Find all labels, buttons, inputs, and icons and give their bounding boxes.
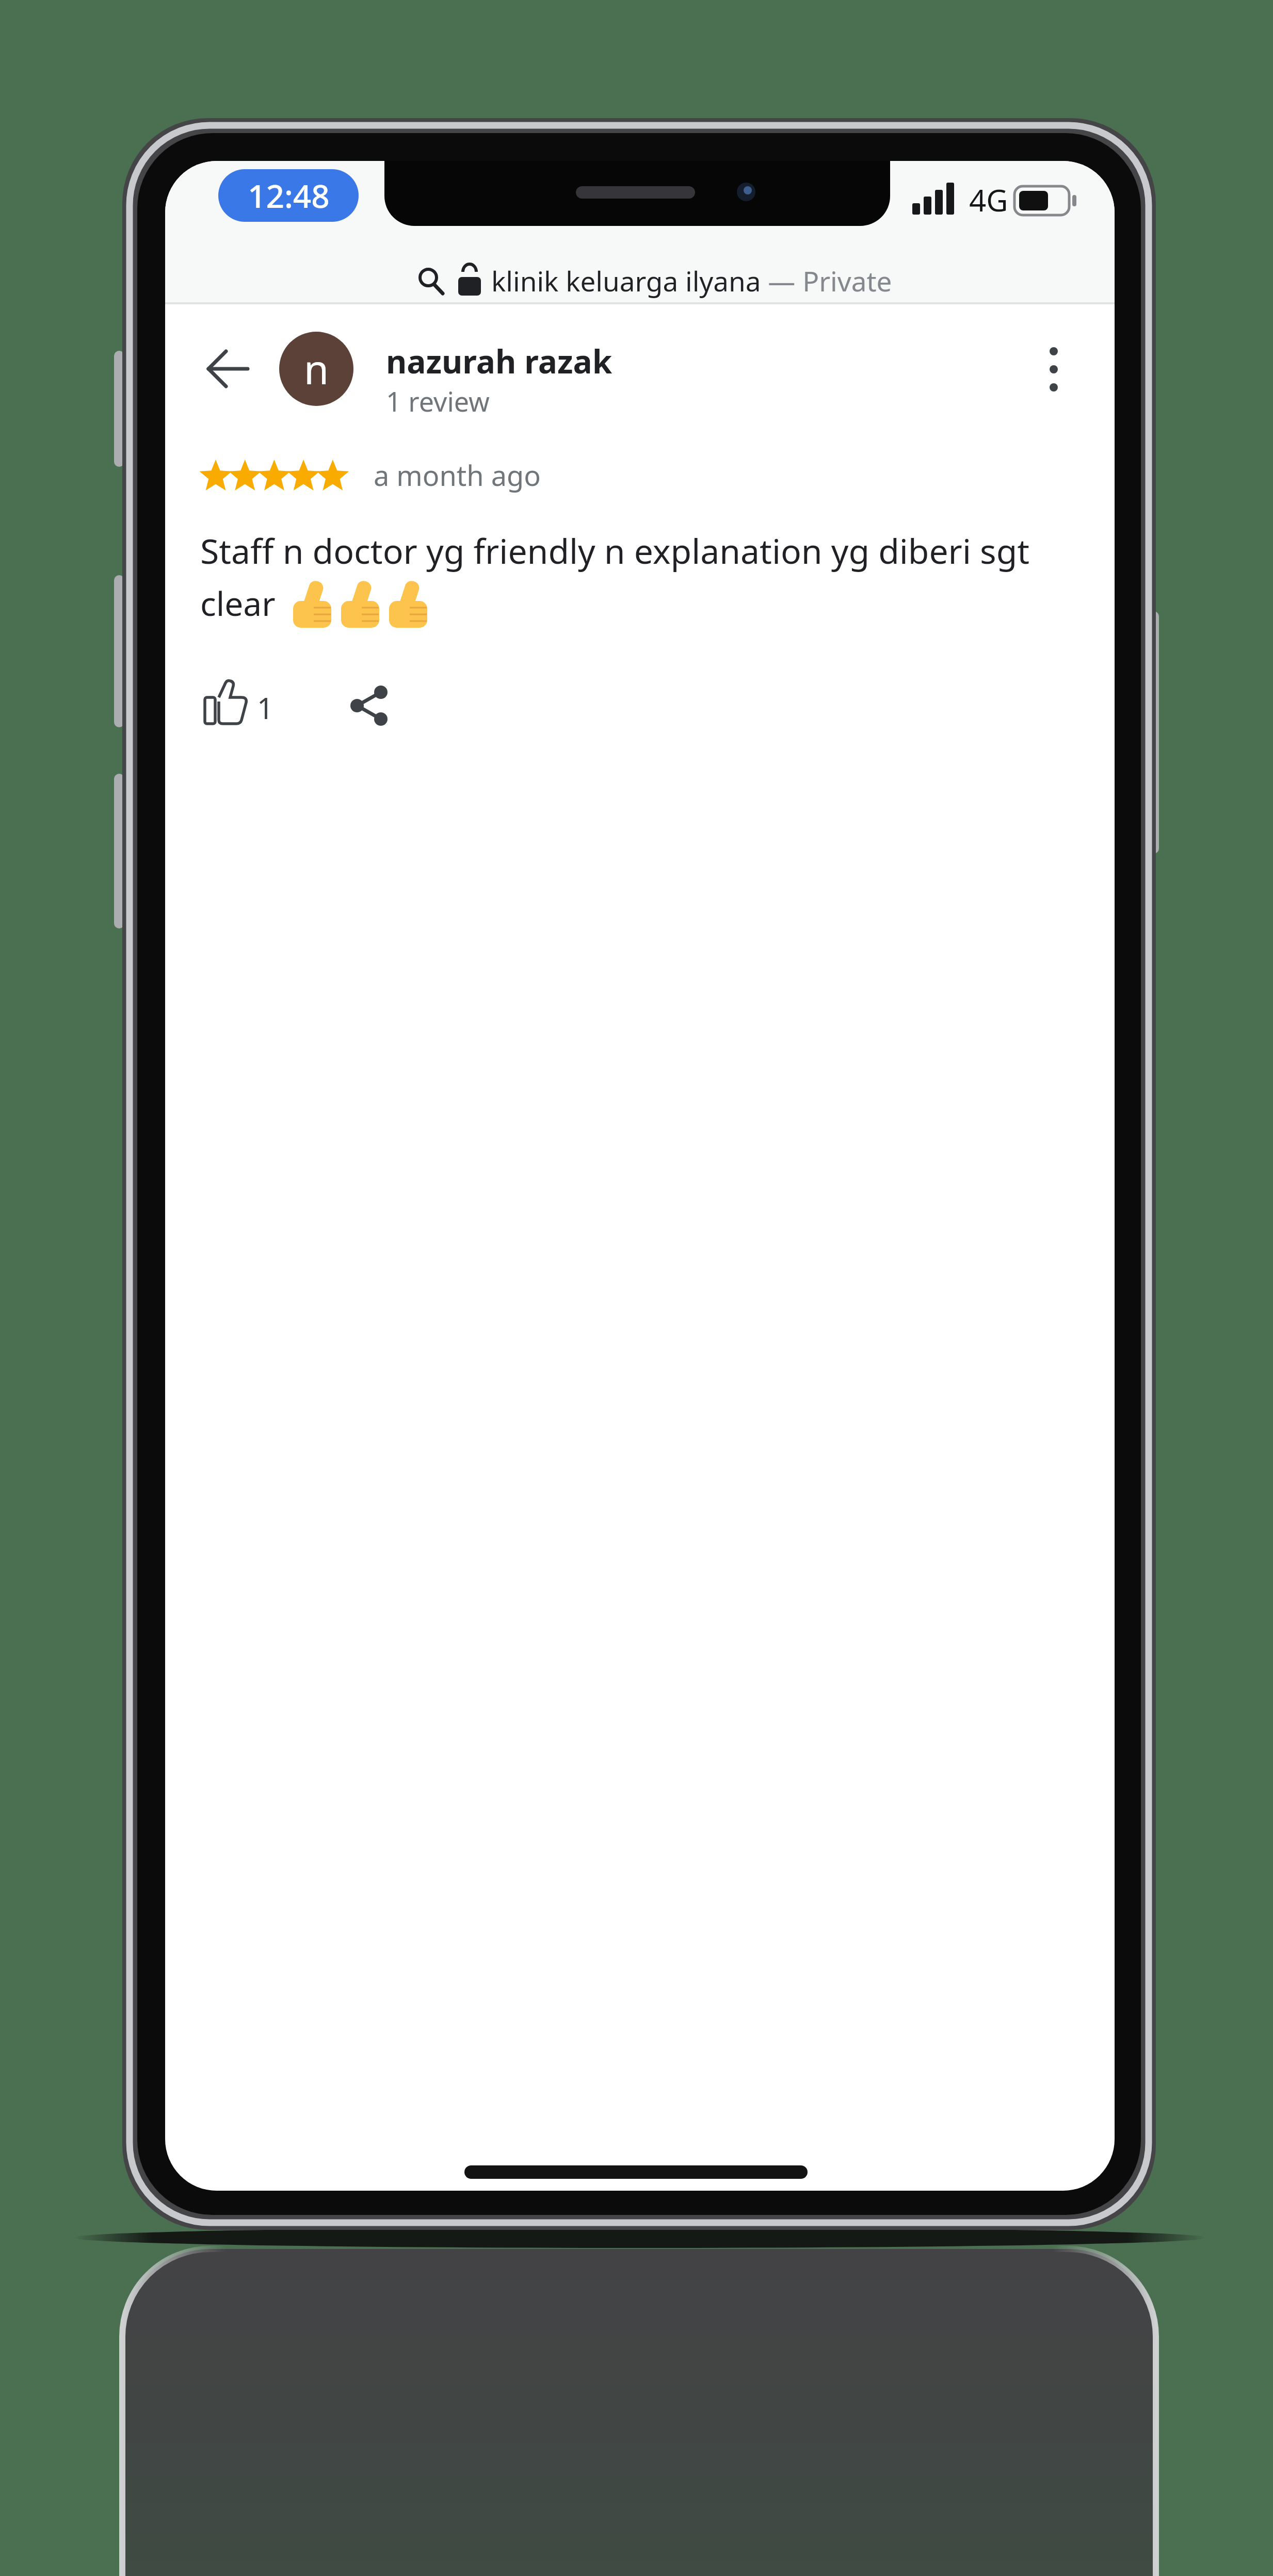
staticText: a month ago — [374, 456, 541, 494]
staticText: 4G — [969, 180, 1008, 219]
button[interactable] — [191, 338, 263, 400]
button[interactable] — [1022, 330, 1084, 407]
button[interactable] — [273, 325, 841, 413]
button[interactable] — [191, 671, 289, 738]
button[interactable] — [335, 676, 408, 738]
staticText: 12:48 — [248, 174, 330, 217]
staticText: n — [304, 341, 329, 396]
staticText: nazurah razak — [386, 339, 613, 383]
button[interactable] — [165, 242, 1115, 302]
staticText: klinik keluarga ilyana — Private — [491, 262, 892, 299]
staticText: Staff n doctor yg friendly n explanation… — [200, 527, 1030, 574]
staticText: 1 review — [386, 383, 490, 419]
button[interactable]: 12:48 — [218, 169, 359, 222]
staticText: 1 — [257, 688, 274, 727]
staticText: clear — [200, 581, 276, 626]
